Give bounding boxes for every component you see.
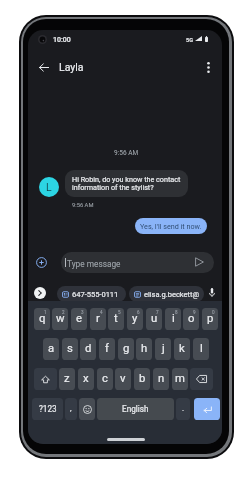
staticText: Type message	[67, 259, 121, 269]
staticText: 5G	[186, 37, 193, 44]
staticText: 0	[212, 310, 215, 315]
button[interactable]: q	[34, 308, 50, 330]
staticText: c	[102, 372, 108, 385]
button[interactable]: p	[202, 308, 218, 330]
staticText: 8	[175, 310, 178, 315]
staticText: 2	[62, 310, 65, 315]
button[interactable]: v	[115, 368, 131, 390]
button[interactable]: .	[176, 398, 190, 420]
button[interactable]: Hi Robin, do you know the contact inform…	[65, 170, 188, 197]
button[interactable]: Shift	[34, 368, 57, 390]
staticText: 4	[100, 310, 103, 315]
button[interactable]: Back	[35, 58, 53, 76]
staticText: 3	[81, 310, 84, 315]
staticText: y	[132, 312, 138, 325]
staticText: Yes, I'll send it now.	[140, 222, 202, 230]
staticText: 7	[156, 310, 159, 315]
staticText: t	[114, 312, 118, 325]
staticText: n	[158, 372, 165, 385]
staticText: Layla	[59, 61, 84, 73]
staticText: q	[39, 312, 46, 325]
staticText: m	[175, 372, 185, 385]
staticText: e	[76, 312, 82, 325]
button[interactable]: c	[97, 368, 113, 390]
button[interactable]: x	[78, 368, 94, 390]
button[interactable]: English	[97, 398, 174, 420]
staticText: elisa.g.beckett@	[144, 290, 200, 299]
button[interactable]: More suggestions	[34, 287, 46, 299]
staticText: u	[151, 312, 158, 325]
staticText: 10:00	[53, 36, 71, 44]
button[interactable]: a	[43, 338, 59, 360]
button[interactable]: g	[118, 338, 134, 360]
staticText: h	[141, 342, 148, 355]
button[interactable]: ,	[65, 398, 77, 420]
staticText: k	[179, 342, 185, 355]
button[interactable]: 647-555-0111	[57, 286, 126, 302]
button[interactable]: Voice input	[206, 286, 218, 298]
button[interactable]: Add attachment	[33, 254, 49, 270]
button[interactable]: o	[183, 308, 199, 330]
staticText: f	[105, 342, 109, 355]
staticText: 5	[118, 310, 121, 315]
button[interactable]: m	[172, 368, 188, 390]
staticText: b	[139, 372, 146, 385]
button[interactable]: Enter	[194, 398, 220, 420]
button[interactable]: More options	[199, 58, 217, 76]
button[interactable]: Backspace	[190, 368, 213, 390]
staticText: v	[120, 372, 126, 385]
staticText: s	[67, 342, 73, 355]
button[interactable]: Emoji	[79, 398, 95, 420]
button[interactable]: k	[174, 338, 190, 360]
staticText: ,	[70, 404, 72, 413]
button[interactable]: Type message	[61, 252, 214, 273]
staticText: j	[162, 342, 165, 355]
staticText: 647-555-0111	[72, 290, 119, 299]
staticText: r	[96, 312, 100, 325]
button[interactable]: z	[59, 368, 75, 390]
staticText: .	[182, 404, 185, 413]
staticText: i	[172, 312, 175, 325]
button[interactable]: r	[90, 308, 106, 330]
button[interactable]: f	[99, 338, 115, 360]
staticText: ?123	[39, 404, 57, 414]
staticText: 9:56 AM	[114, 149, 139, 157]
staticText: 9	[193, 310, 196, 315]
staticText: l	[200, 342, 203, 355]
button[interactable]: t	[108, 308, 124, 330]
staticText: p	[207, 312, 214, 325]
button[interactable]: h	[136, 338, 152, 360]
staticText: a	[48, 342, 55, 355]
button[interactable]: l	[193, 338, 209, 360]
button[interactable]: u	[146, 308, 162, 330]
staticText: 1	[44, 310, 47, 315]
staticText: Hi Robin, do you know the contact inform…	[72, 175, 181, 191]
staticText: o	[188, 312, 195, 325]
button[interactable]: w	[52, 308, 68, 330]
staticText: w	[56, 312, 65, 325]
button[interactable]: n	[153, 368, 169, 390]
button[interactable]: d	[80, 338, 96, 360]
button[interactable]: e	[71, 308, 87, 330]
staticText: 9:56 AM	[72, 202, 94, 209]
button[interactable]: j	[155, 338, 171, 360]
button[interactable]: b	[134, 368, 150, 390]
button[interactable]: Yes, I'll send it now.	[135, 218, 207, 234]
button[interactable]: s	[62, 338, 78, 360]
button[interactable]: elisa.g.beckett@	[129, 286, 204, 302]
button[interactable]: y	[127, 308, 143, 330]
staticText: d	[85, 342, 92, 355]
button[interactable]: i	[165, 308, 181, 330]
staticText: z	[64, 372, 70, 385]
staticText: x	[83, 372, 89, 385]
button[interactable]: ?123	[32, 398, 63, 420]
staticText: L	[46, 181, 52, 193]
staticText: English	[122, 404, 149, 414]
staticText: 6	[137, 310, 140, 315]
staticText: g	[123, 342, 130, 355]
